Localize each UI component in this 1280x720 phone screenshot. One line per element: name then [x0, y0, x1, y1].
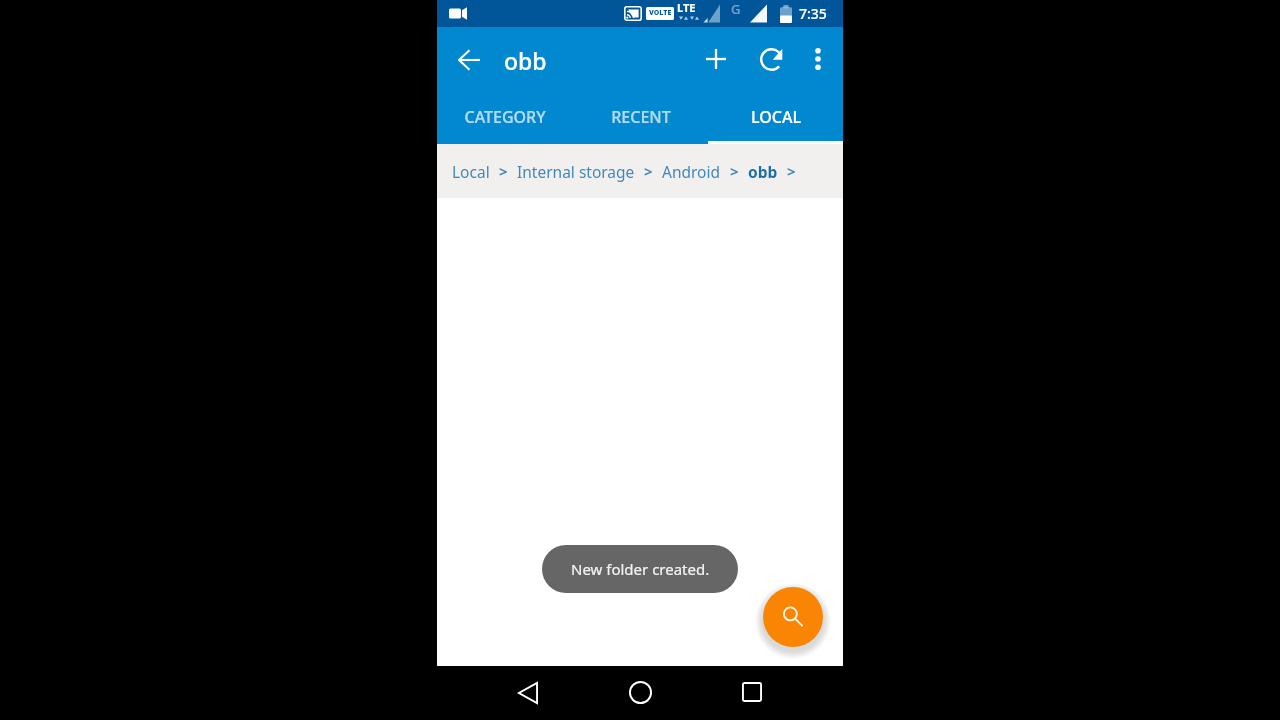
button[interactable]: Refresh [747, 35, 795, 83]
staticText: obb [504, 45, 547, 76]
button[interactable]: RECENT [573, 95, 708, 144]
staticText: RECENT [611, 106, 671, 128]
staticText: G [731, 0, 741, 18]
staticText: VOLTE [649, 8, 672, 18]
staticText: > [644, 161, 653, 181]
staticText: Local [452, 161, 490, 182]
staticText: Internal storage [517, 161, 635, 182]
staticText: > [787, 161, 796, 181]
button[interactable]: Search [763, 587, 823, 647]
button[interactable]: obb [748, 144, 778, 198]
staticText: CATEGORY [464, 106, 546, 128]
button[interactable]: LOCAL [708, 95, 843, 144]
staticText: > [730, 161, 739, 181]
button[interactable]: CATEGORY [437, 95, 573, 144]
button[interactable]: Internal storage [517, 144, 635, 198]
button[interactable]: Home [616, 668, 664, 716]
button[interactable]: Recent apps [728, 668, 776, 716]
button[interactable]: Android [662, 144, 721, 198]
staticText: LOCAL [751, 106, 801, 128]
button[interactable]: Back [445, 36, 493, 84]
staticText: obb [748, 161, 778, 182]
staticText: New folder created. [571, 559, 710, 579]
button[interactable]: Add [692, 35, 740, 83]
staticText: > [499, 161, 508, 181]
button[interactable]: More options [794, 35, 842, 83]
button[interactable]: Local [452, 144, 490, 198]
staticText: Android [662, 161, 721, 182]
staticText: LTE [677, 0, 696, 15]
button[interactable]: Back [504, 669, 552, 717]
staticText: 7:35 [799, 4, 827, 23]
